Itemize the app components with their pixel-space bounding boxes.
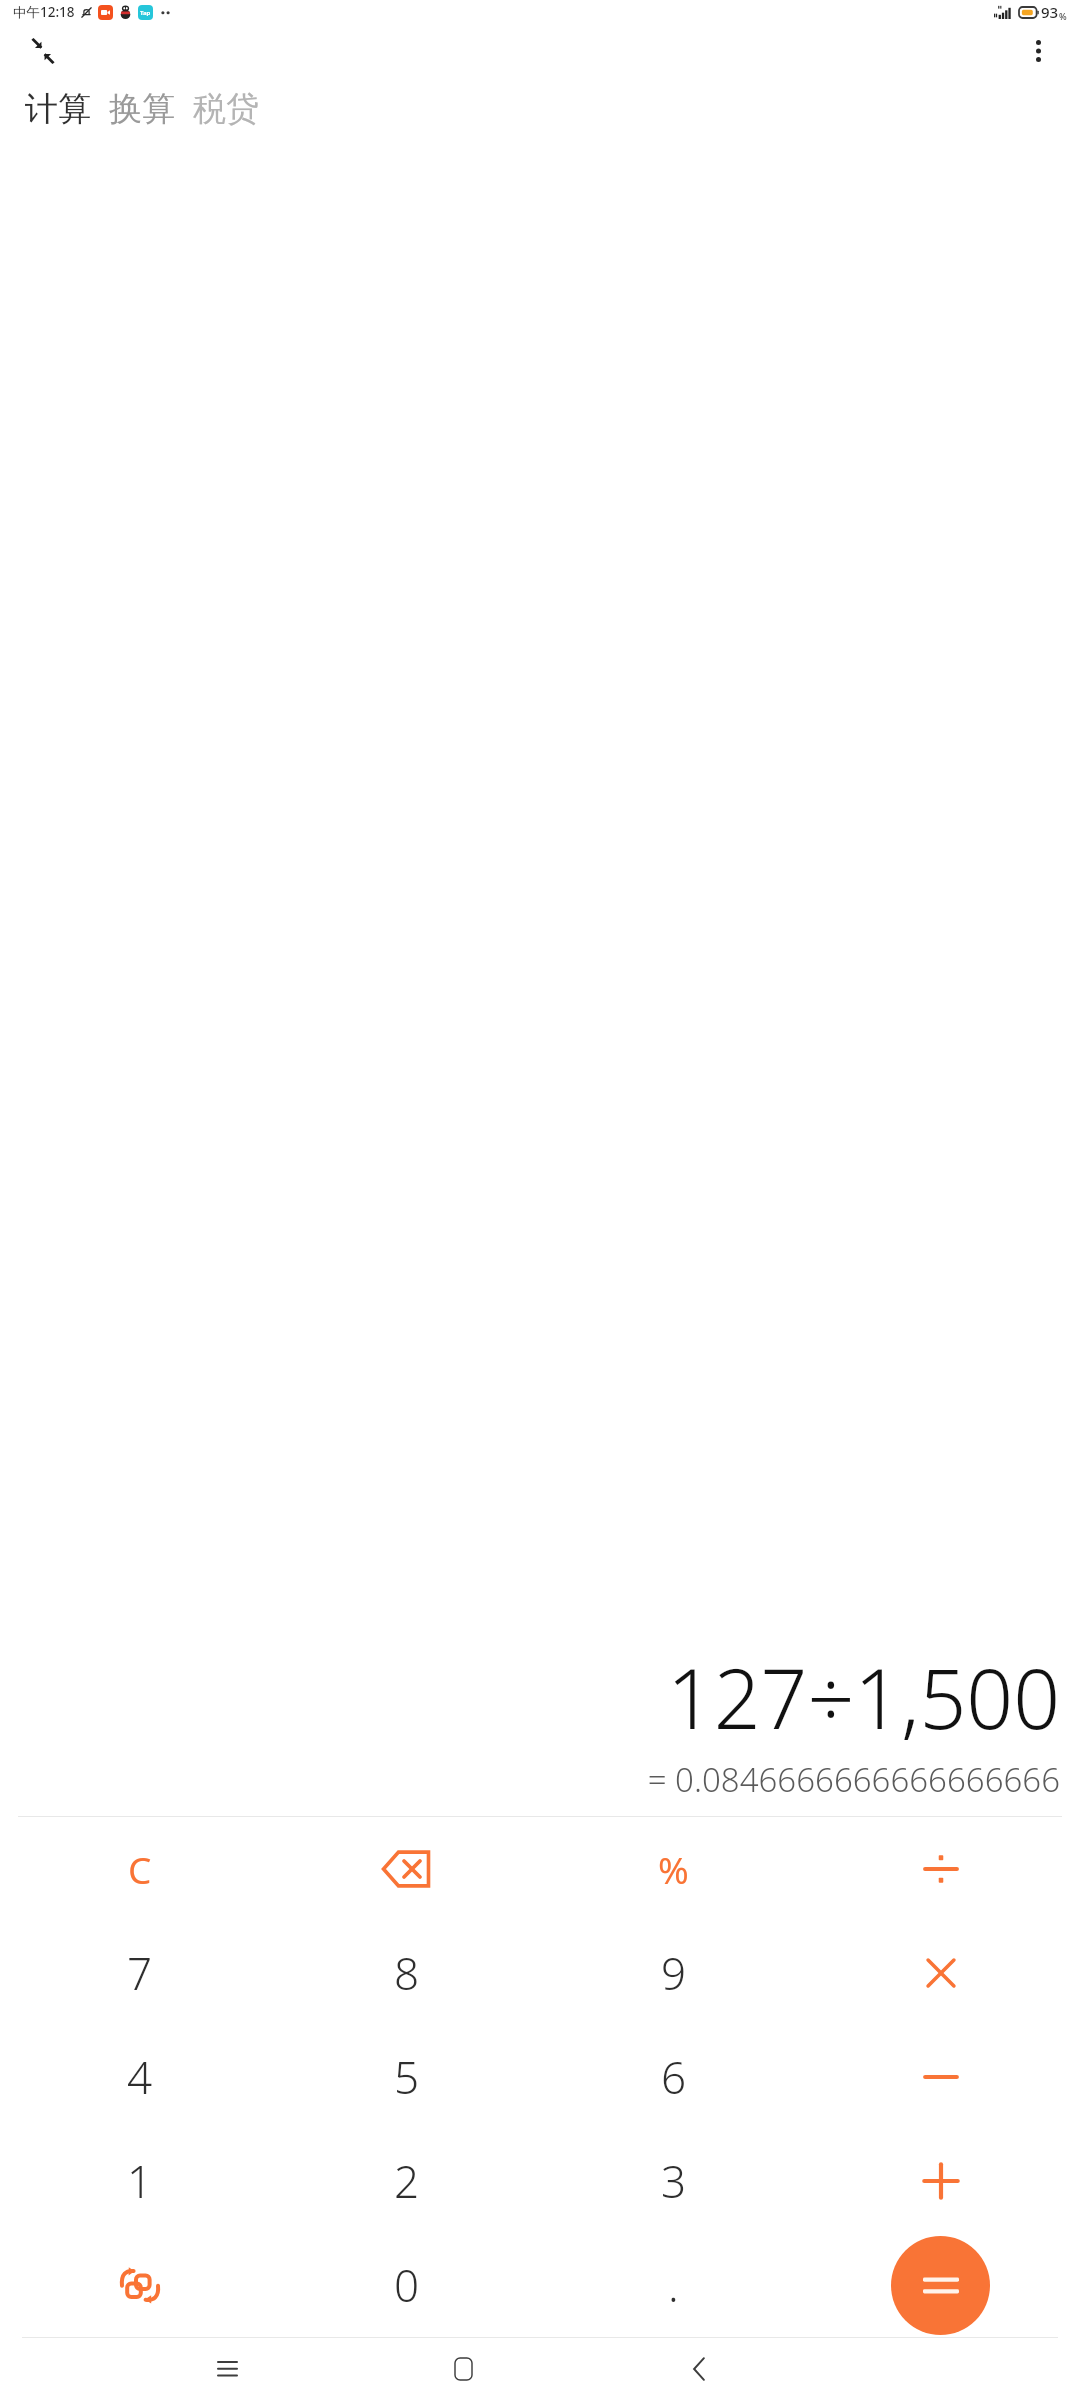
button[interactable]: 8 <box>273 1921 540 2025</box>
staticText: C <box>128 1844 152 1894</box>
button[interactable]: 税贷 <box>189 86 263 132</box>
staticText: 8 <box>394 1943 420 2003</box>
button[interactable]: 3 <box>540 2129 807 2233</box>
staticText: = 0.0846666666666666666 <box>647 1757 1060 1802</box>
button[interactable]: Back <box>672 2342 726 2396</box>
button[interactable]: More options <box>1016 29 1060 73</box>
staticText: % <box>1059 10 1067 22</box>
button[interactable]: 0 <box>273 2233 540 2337</box>
staticText: 127÷1,500 <box>666 1641 1060 1753</box>
button[interactable]: Collapse <box>22 30 64 72</box>
button[interactable]: 7 <box>6 1921 273 2025</box>
button[interactable]: 5 <box>273 2025 540 2129</box>
staticText: 1 <box>127 2151 153 2211</box>
staticText: 2 <box>394 2151 420 2211</box>
button[interactable]: 2 <box>273 2129 540 2233</box>
staticText: 税贷 <box>193 88 259 130</box>
staticText: 换算 <box>109 88 175 130</box>
staticText: % <box>658 1844 689 1894</box>
button[interactable]: 计算 <box>21 86 95 132</box>
staticText: 6 <box>661 2047 687 2107</box>
button[interactable]: Equals <box>891 2236 990 2335</box>
button[interactable]: C <box>6 1817 273 1921</box>
staticText: 0 <box>394 2255 420 2315</box>
button[interactable]: 换算 <box>105 86 179 132</box>
button[interactable]: 4 <box>6 2025 273 2129</box>
staticText: . <box>668 2255 679 2315</box>
button[interactable]: Recents <box>200 2342 254 2396</box>
staticText: 5 <box>394 2047 420 2107</box>
staticText: 计算 <box>25 88 91 130</box>
button[interactable]: Convert <box>6 2233 273 2337</box>
staticText: 7 <box>127 1943 153 2003</box>
button[interactable]: 6 <box>540 2025 807 2129</box>
button[interactable]: Plus <box>807 2129 1074 2233</box>
button[interactable]: Multiply <box>807 1921 1074 2025</box>
button[interactable]: % <box>540 1817 807 1921</box>
button[interactable]: Backspace <box>273 1817 540 1921</box>
button[interactable]: . <box>540 2233 807 2337</box>
staticText: Tap <box>140 9 151 17</box>
button[interactable]: 1 <box>6 2129 273 2233</box>
button[interactable]: Minus <box>807 2025 1074 2129</box>
button[interactable]: 9 <box>540 1921 807 2025</box>
staticText: 4 <box>127 2047 153 2107</box>
staticText: 中午12:18 <box>13 3 75 21</box>
button[interactable]: Home <box>436 2342 490 2396</box>
staticText: 9 <box>661 1943 687 2003</box>
staticText: 3 <box>661 2151 687 2211</box>
staticText: 93 <box>1041 2 1059 22</box>
button[interactable]: Divide <box>807 1817 1074 1921</box>
